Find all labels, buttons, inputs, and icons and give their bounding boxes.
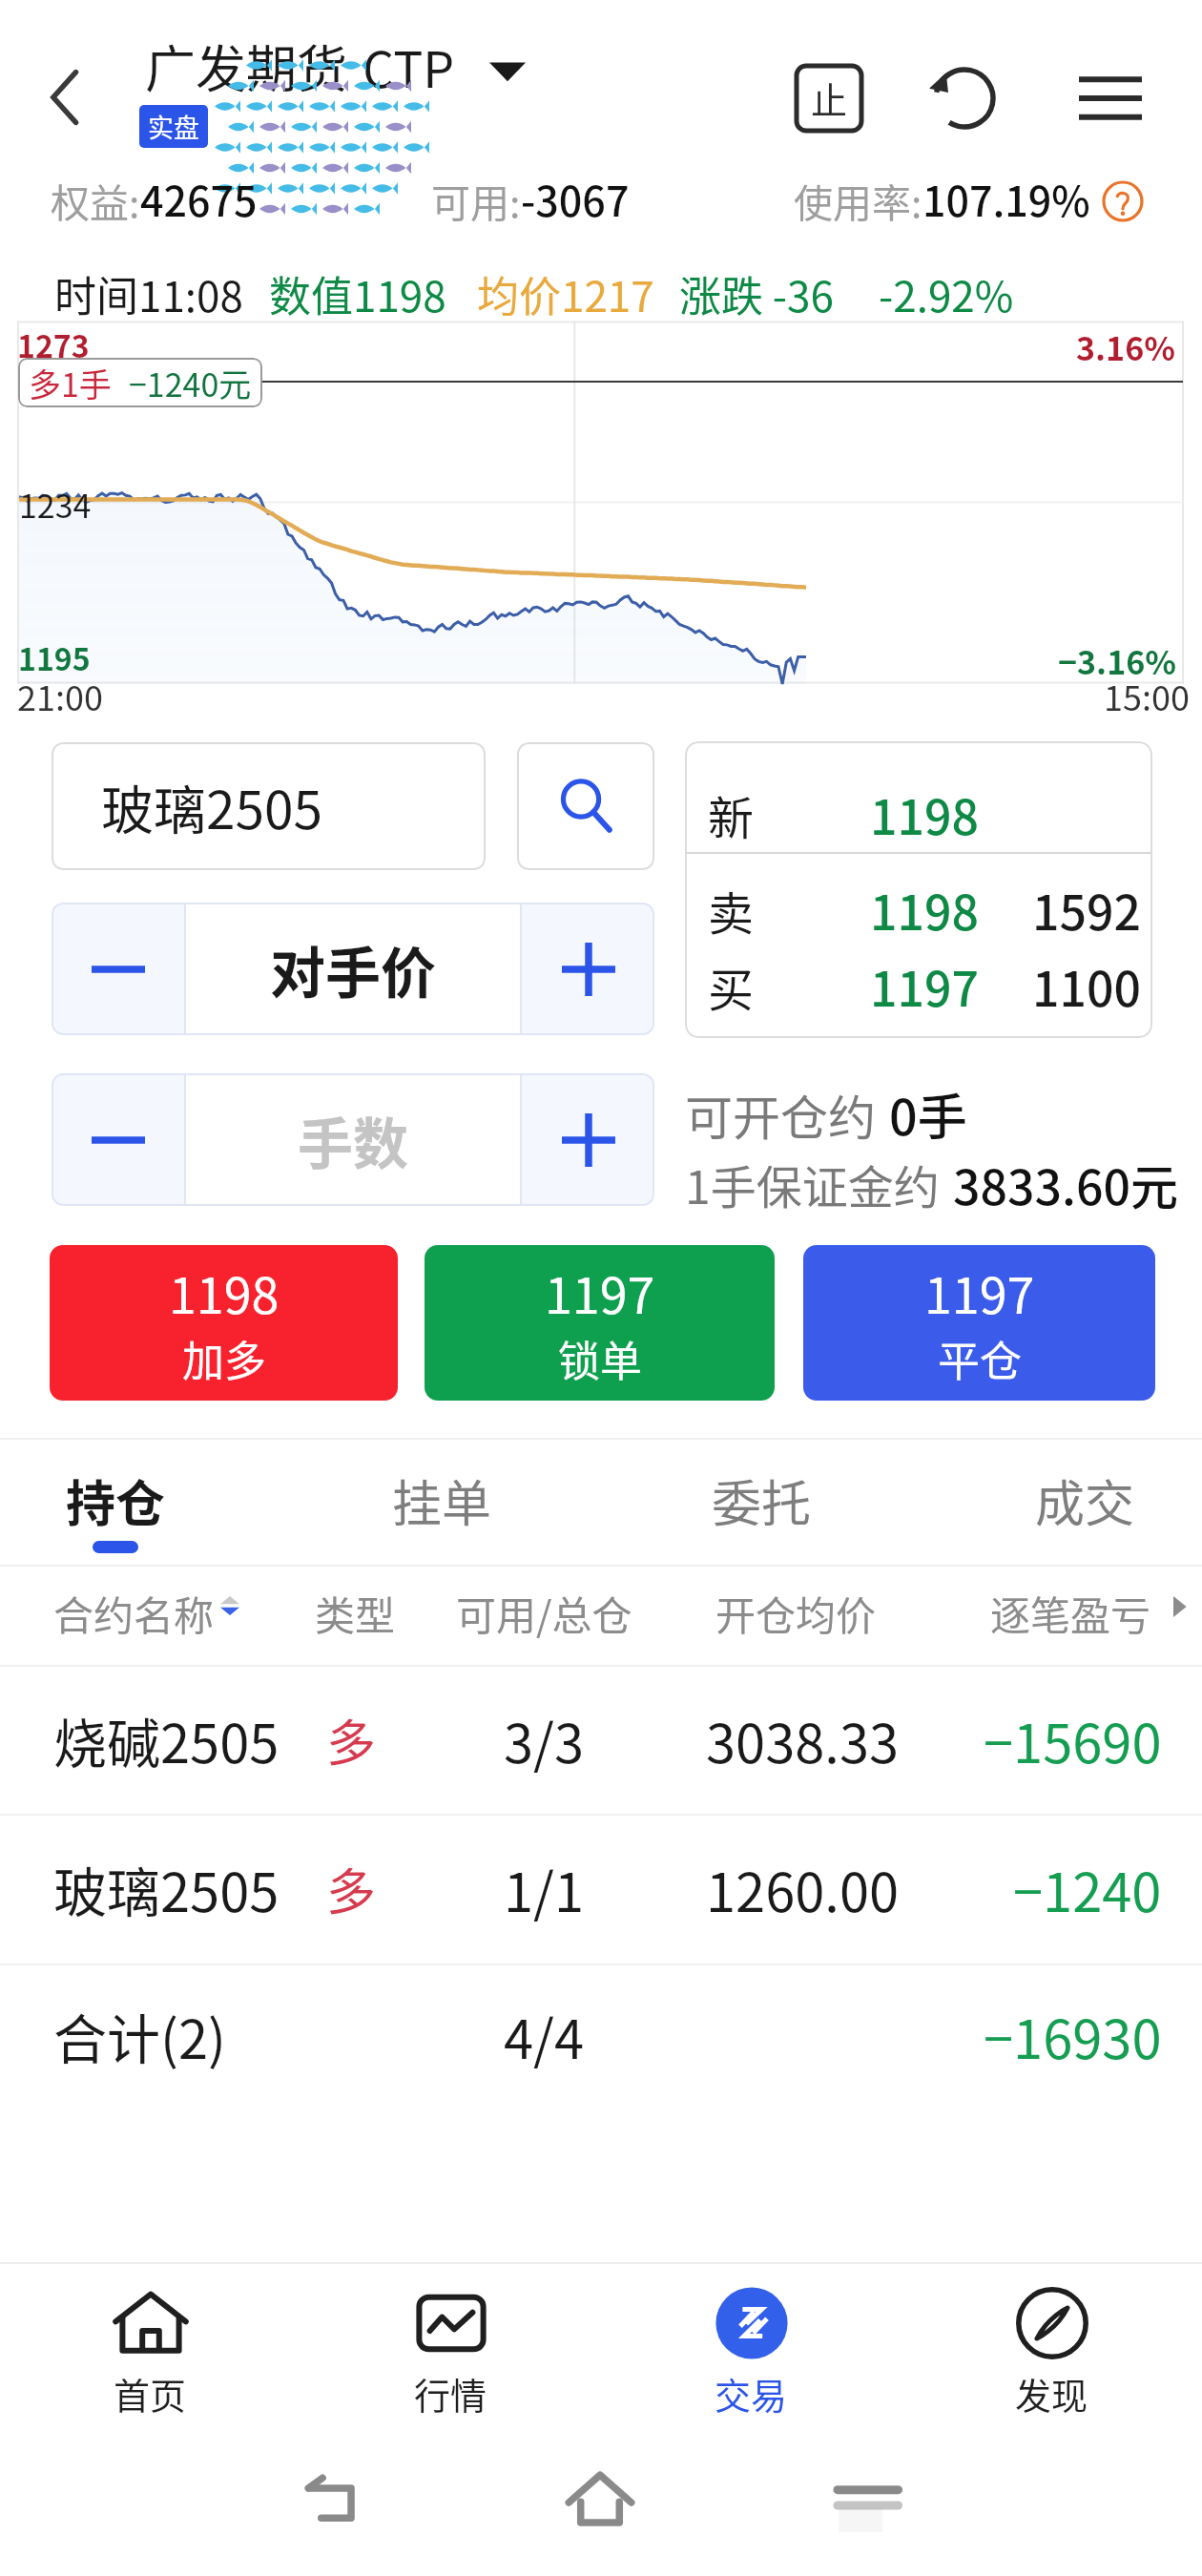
staticText: 1手保证金约 — [685, 1151, 940, 1217]
staticText: 3833.60元 — [953, 1150, 1178, 1218]
staticText: 卖 — [708, 877, 755, 944]
button[interactable]: 委托 — [628, 1440, 895, 1565]
button[interactable]: 按逐笔盈亏排序 — [973, 1568, 1192, 1654]
staticText: 锁单 — [558, 1328, 642, 1389]
staticText: 1100 — [1032, 951, 1141, 1020]
button[interactable]: 1197 — [425, 1245, 775, 1401]
staticText: 3038.33 — [706, 1701, 900, 1778]
button[interactable]: 1198 — [50, 1245, 398, 1401]
staticText: 1592 — [1032, 875, 1141, 944]
staticText: 权益: — [51, 172, 140, 228]
staticText: 首页 — [114, 2367, 187, 2420]
staticText: -2.92% — [879, 263, 1014, 324]
staticText: 4/4 — [504, 1997, 585, 2074]
staticText: 合约名称 — [53, 1584, 215, 1642]
staticText: 1198 — [870, 875, 979, 944]
staticText: 玻璃2505 — [101, 768, 323, 844]
button[interactable]: Back — [24, 56, 106, 138]
button[interactable]: Refresh — [919, 52, 1010, 144]
button[interactable]: 挂单 — [308, 1440, 575, 1565]
button[interactable]: 玻璃2505 — [52, 742, 486, 870]
staticText: 止 — [811, 72, 848, 124]
staticText: 1/1 — [504, 1850, 585, 1927]
staticText: 1234 — [19, 481, 92, 528]
button[interactable]: 止损设置 — [783, 52, 875, 144]
staticText: 平仓 — [938, 1328, 1022, 1389]
staticText: 多1手 — [29, 360, 112, 406]
staticText: 0手 — [889, 1078, 967, 1150]
staticText: 多 — [326, 1853, 377, 1924]
staticText: 逐笔盈亏 — [990, 1584, 1151, 1642]
staticText: 1195 — [18, 635, 91, 679]
staticText: 15:00 — [1104, 671, 1190, 720]
button[interactable]: Back — [290, 2460, 376, 2545]
button[interactable]: 发现 — [901, 2257, 1202, 2445]
button[interactable]: 减少 — [52, 903, 184, 1035]
button[interactable]: 成交 — [951, 1440, 1202, 1565]
staticText: 新 — [708, 781, 755, 848]
staticText: 行情 — [414, 2367, 487, 2420]
staticText: 手数 — [298, 1100, 409, 1180]
staticText: 买 — [708, 953, 755, 1020]
staticText: 类型 — [315, 1584, 396, 1642]
staticText: 均价1217 — [477, 263, 654, 324]
button[interactable]: 减少 — [52, 1073, 184, 1206]
staticText: 发现 — [1015, 2367, 1088, 2420]
staticText: 可开仓约 — [685, 1080, 876, 1149]
button[interactable]: 增加 — [522, 903, 654, 1035]
staticText: 成交 — [1035, 1465, 1135, 1536]
staticText: 加多 — [182, 1328, 266, 1389]
staticText: 挂单 — [392, 1465, 492, 1536]
button[interactable]: 首页 — [0, 2257, 300, 2445]
staticText: 委托 — [712, 1465, 812, 1536]
staticText: 使用率: — [794, 172, 922, 228]
staticText: −16930 — [984, 1997, 1162, 2074]
button[interactable]: 广发期货 — [145, 30, 526, 103]
staticText: 广发期货 — [145, 30, 347, 103]
staticText: 合计(2) — [53, 1997, 226, 2074]
button[interactable]: 持仓 — [0, 1440, 249, 1565]
staticText: 3.16% — [1076, 323, 1175, 370]
staticText: −15690 — [984, 1701, 1162, 1778]
button[interactable]: 按合约名称排序 — [38, 1568, 248, 1654]
button[interactable]: 烧碱2505 — [0, 1665, 1202, 1814]
staticText: 1260.00 — [706, 1850, 900, 1927]
staticText: −3.16% — [1058, 637, 1177, 684]
staticText: 1197 — [870, 951, 979, 1020]
staticText: 开仓均价 — [715, 1584, 877, 1642]
staticText: 3/3 — [504, 1701, 585, 1778]
staticText: 多 — [326, 1704, 377, 1776]
staticText: 1273 — [17, 322, 90, 366]
staticText: 对手价 — [270, 929, 437, 1009]
staticText: 实盘 — [148, 108, 199, 145]
button[interactable]: 增加 — [522, 1073, 654, 1206]
staticText: 42675 — [140, 169, 258, 228]
button[interactable]: Home — [557, 2460, 643, 2545]
staticText: 1197 — [924, 1257, 1035, 1328]
staticText: 1198 — [870, 779, 979, 848]
staticText: 时间11:08 — [54, 263, 243, 324]
button[interactable]: Search — [517, 742, 654, 870]
staticText: 1197 — [545, 1257, 655, 1328]
button[interactable]: 行情 — [300, 2257, 601, 2445]
staticText: 交易 — [715, 2367, 788, 2420]
staticText: 可用/总仓 — [456, 1584, 632, 1642]
button[interactable]: 玻璃2505 — [0, 1814, 1202, 1963]
button[interactable]: 1197 — [803, 1245, 1155, 1401]
staticText: 烧碱2505 — [53, 1701, 280, 1778]
button[interactable]: 交易 — [601, 2257, 901, 2445]
staticText: -3067 — [521, 169, 630, 228]
staticText: −1240 — [1013, 1850, 1162, 1927]
button[interactable]: Menu — [1065, 52, 1156, 144]
button[interactable]: 实盘 — [139, 105, 208, 148]
staticText: −1240元 — [129, 360, 252, 406]
staticText: 1198 — [169, 1257, 280, 1328]
staticText: 涨跌 -36 — [679, 263, 834, 324]
staticText: 107.19% — [922, 169, 1090, 228]
button[interactable]: 合计(2) — [0, 1963, 1202, 2107]
button[interactable]: 帮助 — [1101, 179, 1145, 223]
staticText: 可用: — [431, 172, 521, 228]
staticText: 21:00 — [17, 671, 103, 720]
staticText: 玻璃2505 — [53, 1850, 280, 1927]
button[interactable]: Recents — [824, 2460, 910, 2545]
